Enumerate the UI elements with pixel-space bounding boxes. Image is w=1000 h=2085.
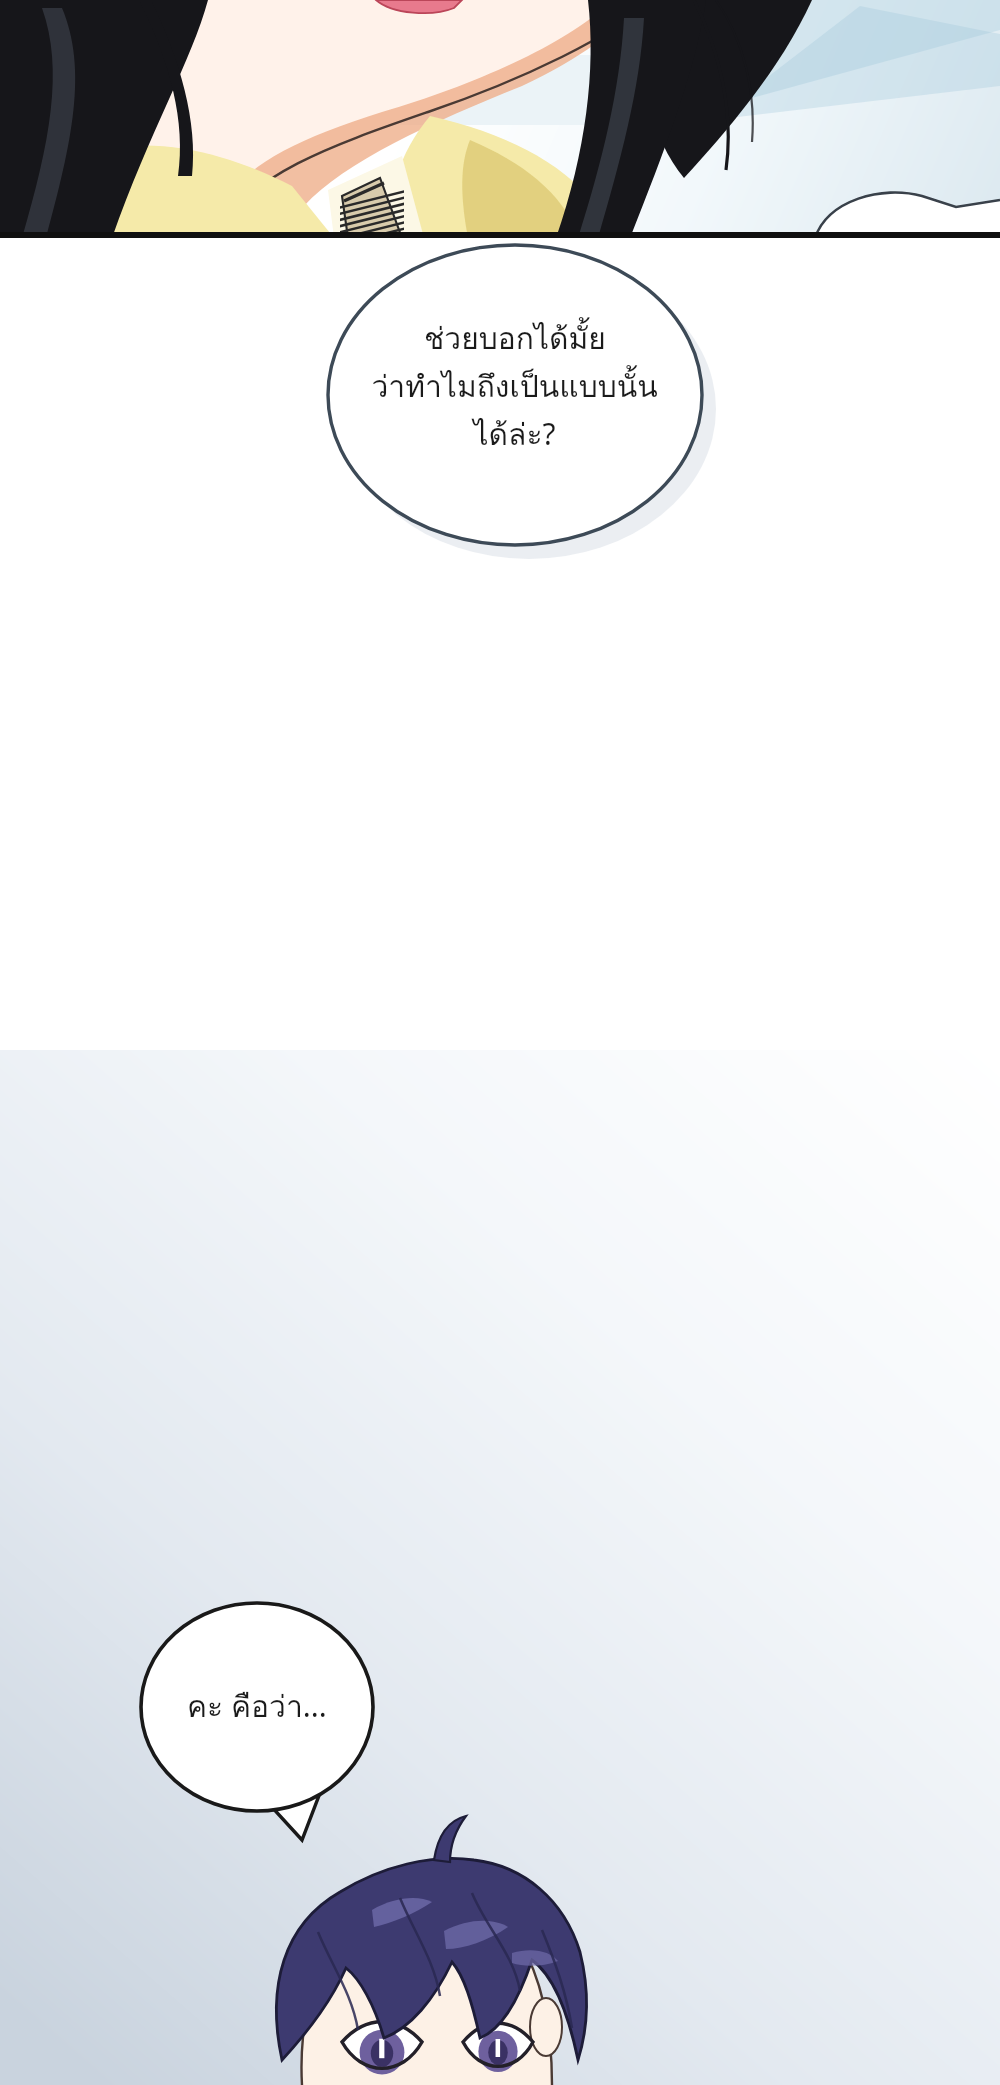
button[interactable] [0,0,1000,2085]
